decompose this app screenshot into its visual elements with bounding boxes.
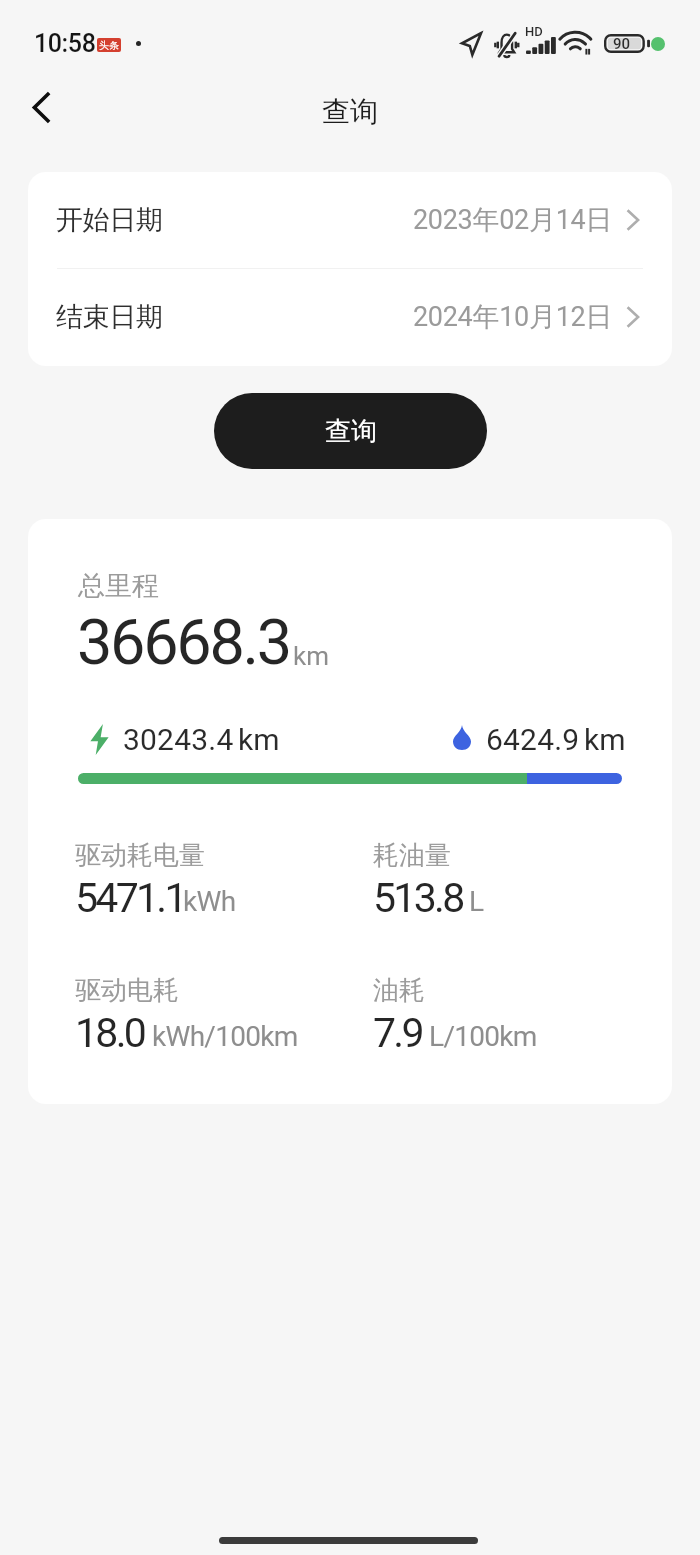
- staticText: 10:58: [34, 29, 96, 58]
- staticText: 驱动电耗: [75, 974, 179, 1007]
- staticText: km: [293, 641, 329, 671]
- staticText: 结束日期: [56, 300, 163, 334]
- staticText: 油耗: [373, 974, 425, 1007]
- staticText: kWh/100km: [152, 1020, 298, 1053]
- staticText: 513.8: [373, 874, 463, 922]
- staticText: km: [584, 722, 626, 757]
- staticText: 30243.4: [123, 722, 234, 757]
- staticText: 90: [613, 35, 631, 53]
- staticText: 耗油量: [373, 839, 451, 872]
- staticText: 36668.3: [77, 606, 290, 680]
- staticText: km: [238, 722, 280, 757]
- staticText: 驱动耗电量: [75, 839, 205, 872]
- staticText: 2023年02月14日: [413, 203, 613, 237]
- staticText: 7.9: [373, 1009, 422, 1057]
- staticText: 查询: [325, 415, 377, 448]
- staticText: L/100km: [429, 1020, 537, 1053]
- staticText: 2024年10月12日: [413, 300, 613, 334]
- button[interactable]: 结束日期: [28, 269, 672, 365]
- staticText: 总里程: [78, 569, 159, 603]
- button[interactable]: 查询: [214, 393, 487, 469]
- staticText: 开始日期: [56, 203, 163, 237]
- staticText: 头条: [99, 39, 119, 52]
- staticText: kWh: [183, 885, 236, 918]
- staticText: 6424.9: [486, 722, 580, 757]
- staticText: 5471.1: [75, 874, 185, 922]
- button[interactable]: 开始日期: [28, 172, 672, 268]
- staticText: HD: [525, 24, 543, 39]
- staticText: L: [469, 885, 484, 918]
- staticText: 查询: [322, 94, 378, 129]
- button[interactable]: Back: [17, 83, 65, 131]
- staticText: 18.0: [75, 1009, 145, 1057]
